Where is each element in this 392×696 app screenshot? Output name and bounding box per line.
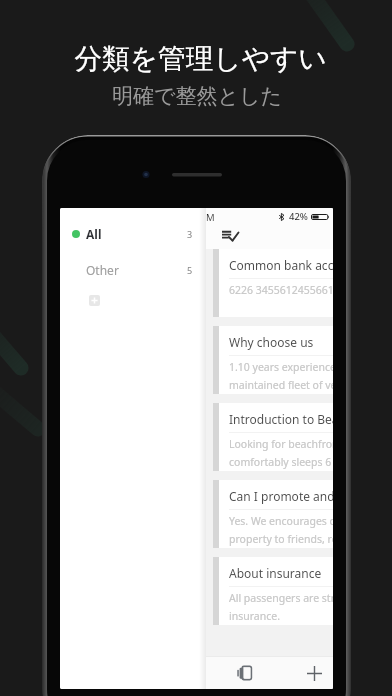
button[interactable]: Common bank account [213, 249, 333, 317]
staticText: property to friends, relat [229, 532, 333, 546]
button[interactable]: Other [60, 258, 206, 281]
staticText: 5 [187, 264, 193, 276]
staticText: Yes. We encourages own [229, 514, 333, 528]
button[interactable]: About insurance [213, 557, 333, 625]
staticText: Why choose us [229, 334, 314, 350]
button[interactable]: Introduction to Beach h [213, 403, 333, 471]
staticText: About insurance [229, 565, 322, 581]
button[interactable]: Add note [300, 662, 328, 684]
button[interactable]: Add category [89, 295, 100, 306]
staticText: 6226 3455612455661 [229, 283, 333, 297]
staticText: Introduction to Beach h [229, 411, 333, 427]
staticText: 3 [187, 228, 193, 240]
button[interactable]: Toggle sidebar [230, 662, 258, 684]
button[interactable]: Why choose us [213, 326, 333, 394]
staticText: insurance. [229, 609, 280, 623]
staticText: 42% [289, 210, 308, 223]
staticText: 分類を管理しやすい [74, 41, 327, 76]
staticText: All [86, 226, 102, 242]
staticText: maintained fleet of vehicl [229, 378, 333, 392]
button[interactable]: All [60, 222, 206, 245]
staticText: 明確で整然とした [112, 83, 282, 109]
button[interactable]: Can I promote and shar [213, 480, 333, 548]
staticText: Other [86, 262, 119, 278]
button[interactable]: Select all [216, 227, 242, 249]
staticText: Can I promote and shar [229, 488, 333, 504]
staticText: 1.10 years experience in t [229, 360, 333, 374]
staticText: All passengers are strong [229, 591, 333, 605]
staticText: Common bank account [229, 257, 333, 273]
staticText: M [206, 211, 215, 224]
staticText: comfortably sleeps 6 with [229, 455, 333, 469]
staticText: Looking for beachfront v [229, 437, 333, 451]
